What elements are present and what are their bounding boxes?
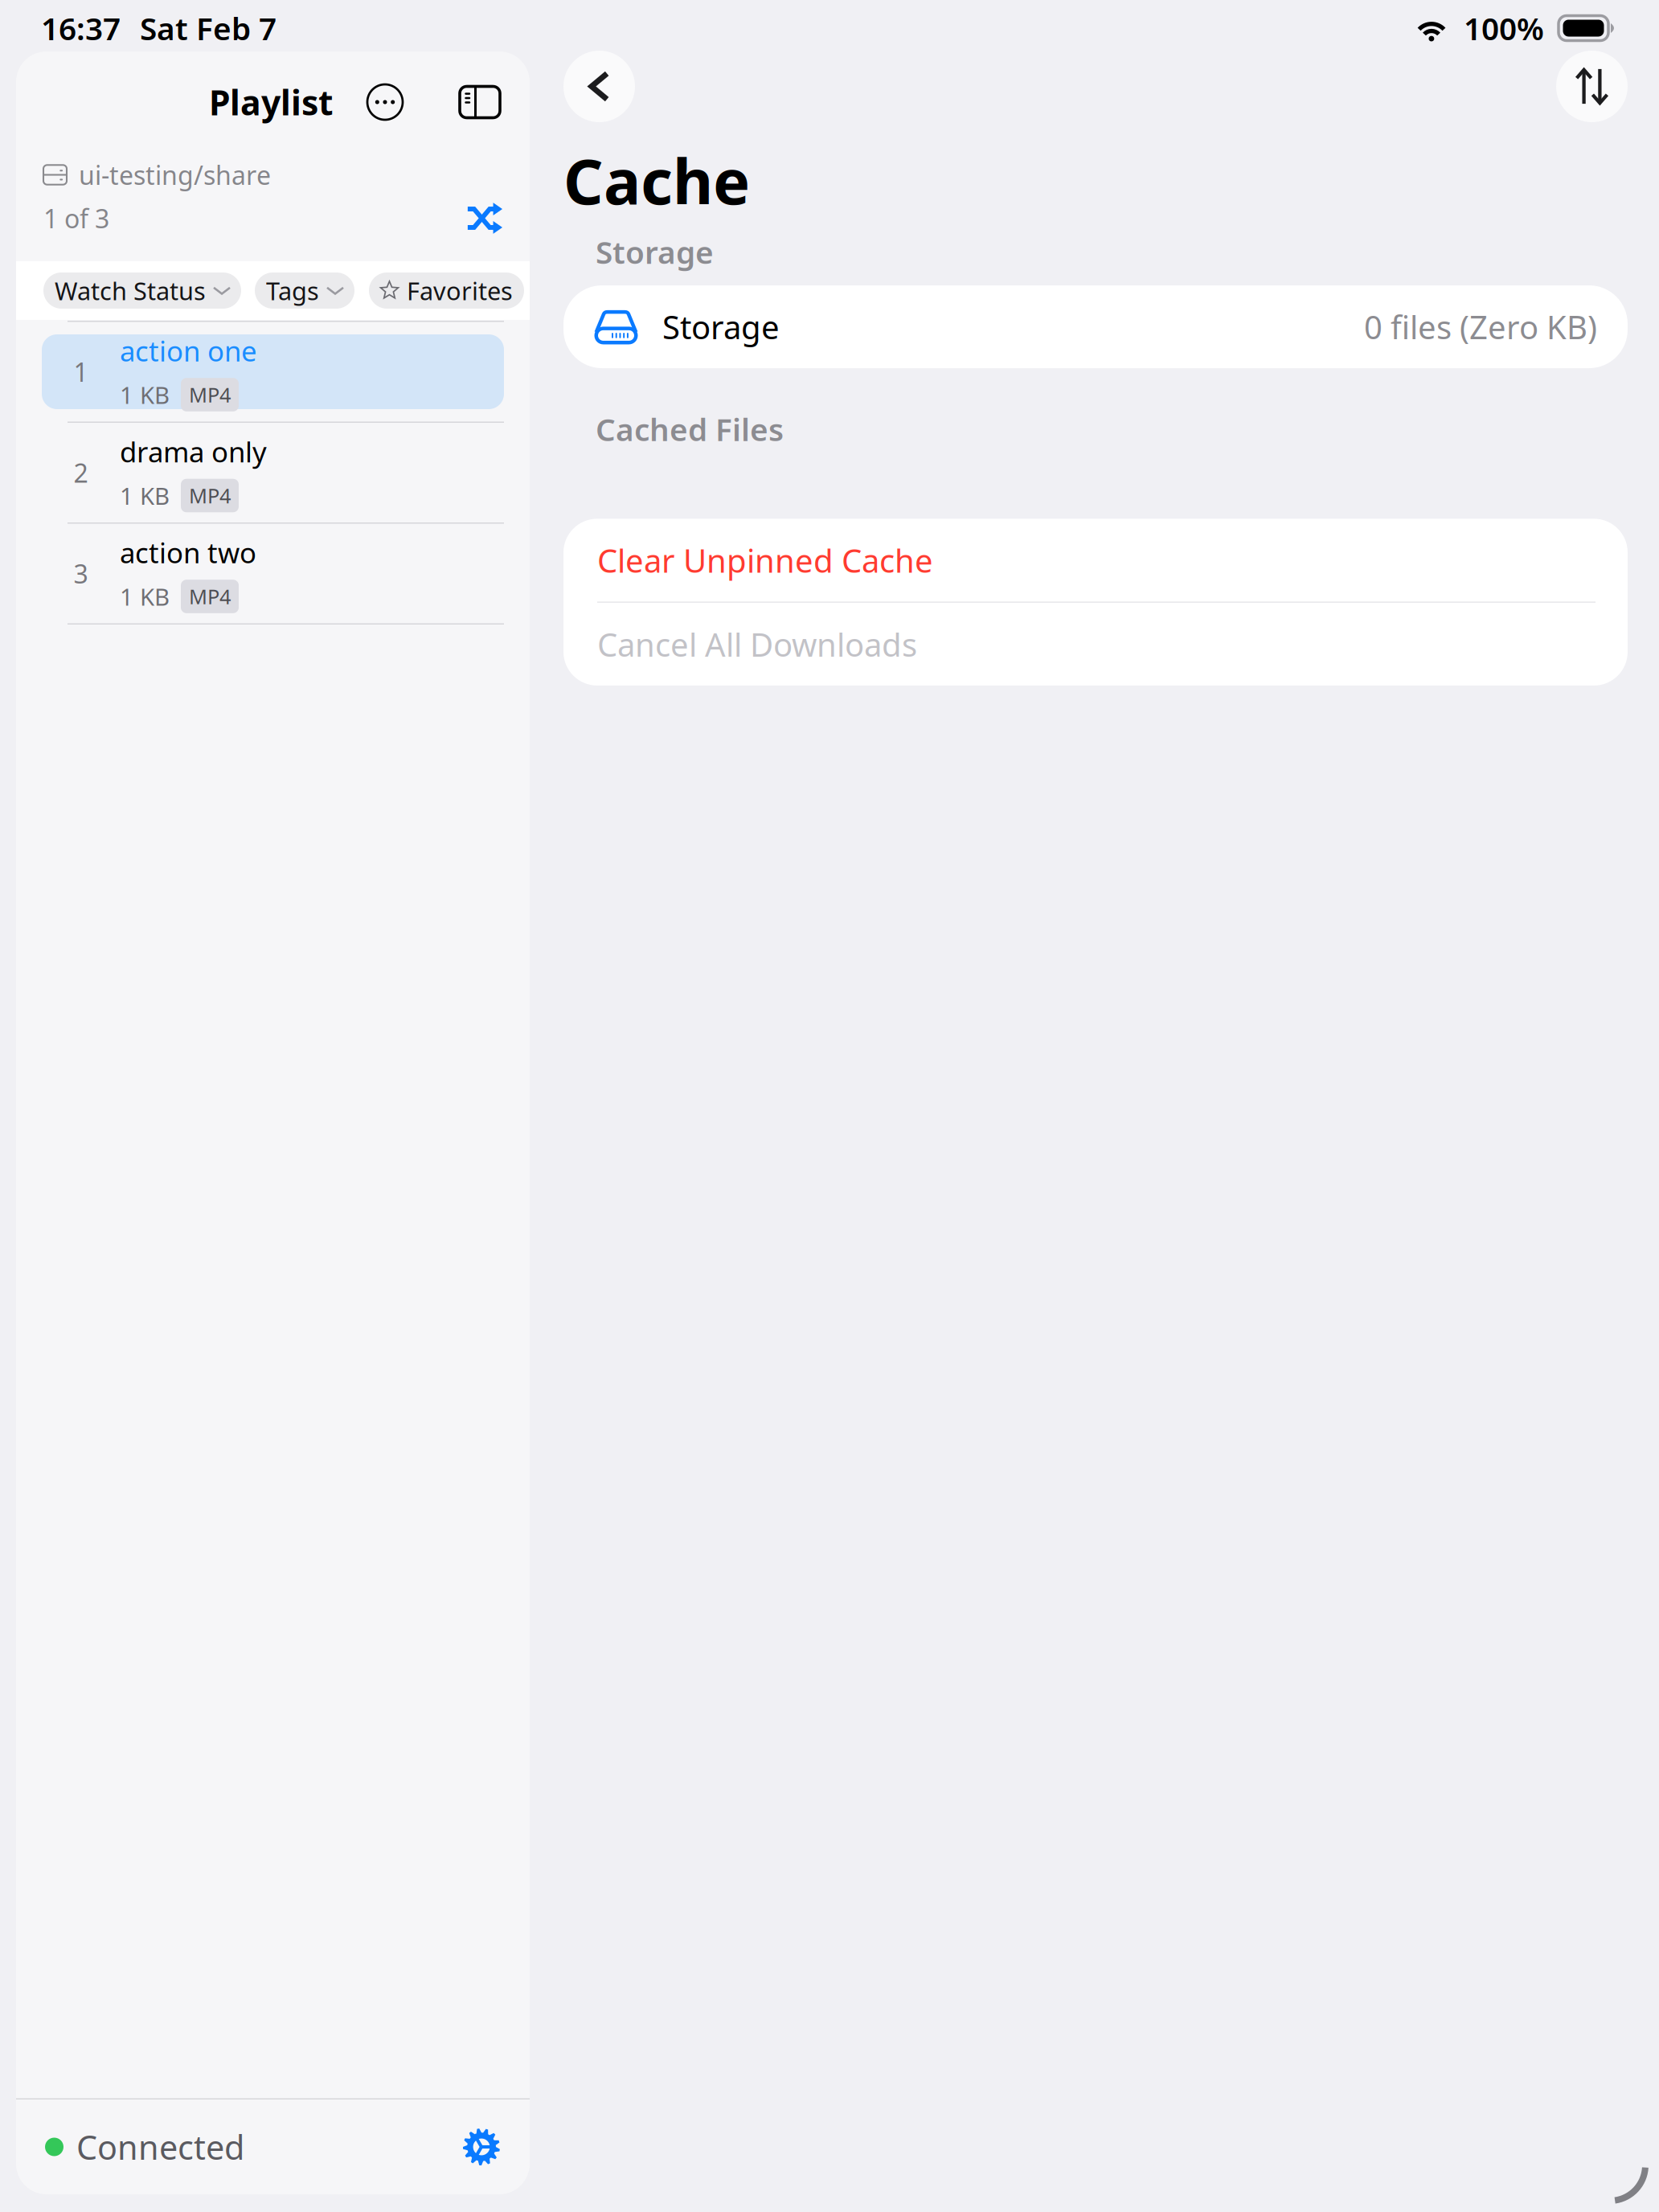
- staticText: Favorites: [407, 274, 513, 307]
- staticText: 1 KB: [120, 581, 170, 612]
- staticText: Playlist: [209, 79, 334, 125]
- button[interactable]: Cancel All Downloads: [563, 603, 1628, 686]
- button[interactable]: Favorites: [369, 272, 524, 309]
- button[interactable]: Storage: [563, 285, 1628, 368]
- button[interactable]: 1: [42, 322, 504, 422]
- staticText: MP4: [189, 583, 231, 610]
- staticText: 1 KB: [120, 480, 170, 511]
- button[interactable]: More options: [367, 84, 403, 120]
- staticText: 2: [74, 456, 88, 490]
- button[interactable]: 3: [42, 524, 504, 623]
- button[interactable]: 2: [42, 423, 504, 522]
- button[interactable]: Back: [563, 51, 635, 122]
- staticText: 100%: [1464, 7, 1544, 49]
- button[interactable]: Sort order: [1556, 51, 1628, 122]
- staticText: 1 of 3: [43, 201, 109, 235]
- staticText: ui-testing/share: [79, 158, 271, 192]
- staticText: 1: [74, 355, 88, 389]
- button[interactable]: Clear Unpinned Cache: [563, 519, 1628, 602]
- button[interactable]: Shuffle: [467, 201, 502, 236]
- staticText: drama only: [120, 433, 267, 470]
- staticText: 0 files (Zero KB): [1364, 305, 1597, 348]
- button[interactable]: Tags: [255, 272, 354, 309]
- staticText: Storage: [596, 231, 714, 272]
- staticText: Cancel All Downloads: [597, 623, 917, 665]
- staticText: Connected: [76, 2125, 244, 2169]
- staticText: Cached Files: [596, 408, 784, 450]
- staticText: action one: [120, 332, 257, 369]
- button[interactable]: Toggle sidebar: [460, 86, 500, 118]
- staticText: Sat Feb 7: [140, 7, 276, 49]
- staticText: Storage: [662, 305, 780, 348]
- staticText: Clear Unpinned Cache: [597, 539, 933, 581]
- staticText: Watch Status: [55, 274, 206, 307]
- staticText: 3: [74, 556, 88, 591]
- staticText: MP4: [189, 381, 231, 408]
- staticText: 16:37: [41, 7, 121, 49]
- button[interactable]: Watch Status: [43, 272, 241, 309]
- staticText: Tags: [266, 274, 319, 307]
- staticText: 1 KB: [120, 379, 170, 410]
- staticText: Cache: [563, 139, 750, 222]
- staticText: action two: [120, 534, 256, 571]
- button[interactable]: Settings: [462, 2128, 501, 2166]
- staticText: MP4: [189, 482, 231, 509]
